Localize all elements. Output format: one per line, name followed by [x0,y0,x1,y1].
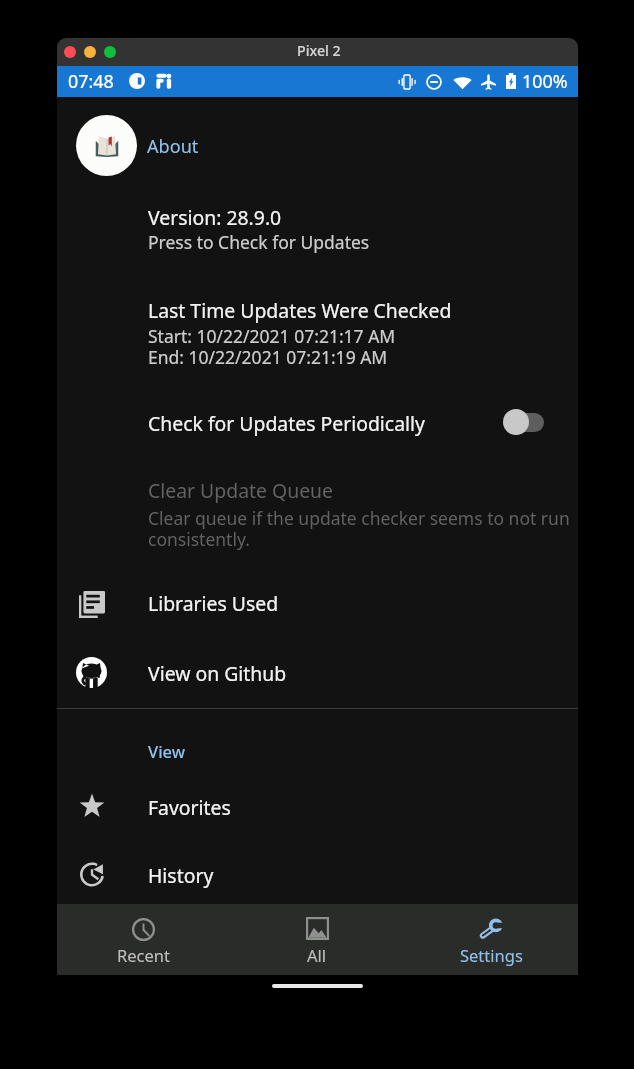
staticText: About [147,134,199,159]
button[interactable]: Libraries Used [57,570,578,638]
button[interactable]: View on Github [57,639,578,707]
button[interactable] [57,290,578,378]
staticText: Pixel 2 [297,41,341,60]
staticText: Last Time Updates Were Checked [148,297,452,323]
button[interactable]: Settings [404,904,578,975]
button[interactable]: About [147,126,207,156]
staticText: History [148,862,214,888]
button[interactable] [57,196,578,260]
staticText: Favorites [148,794,231,820]
staticText: All [307,944,327,966]
staticText: Press to Check for Updates [148,230,370,254]
button[interactable]: About [76,115,137,176]
button[interactable]: Recent [57,904,230,975]
staticText: 100% [522,69,568,93]
button[interactable]: Favorites [57,774,578,842]
staticText: Start: 10/22/2021 07:21:17 AM [148,324,396,348]
button[interactable]: History [57,842,578,910]
staticText: View on Github [148,660,287,686]
staticText: View [148,740,186,762]
staticText: 07:48 [68,69,114,93]
staticText: Settings [460,944,523,966]
staticText: consistently. [148,527,250,551]
staticText: End: 10/22/2021 07:21:19 AM [148,345,388,369]
staticText: Version: 28.9.0 [148,204,282,230]
button[interactable]: All [230,904,404,975]
staticText: Clear Update Queue [148,477,333,503]
staticText: Check for Updates Periodically [148,410,425,436]
staticText: Libraries Used [148,590,279,616]
button[interactable] [57,398,578,456]
staticText: Recent [117,944,170,966]
staticText: Clear queue if the update checker seems … [148,506,570,530]
